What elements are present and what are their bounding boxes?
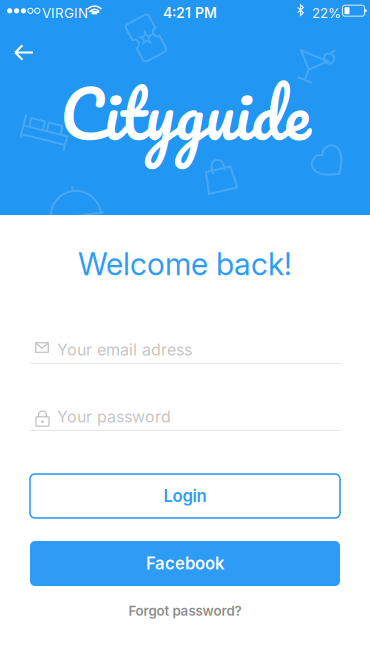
staticText: Login: [163, 486, 206, 506]
button[interactable]: Forgot password?: [105, 599, 265, 623]
button[interactable]: Facebook: [30, 541, 340, 586]
staticText: VIRGIN: [42, 5, 88, 21]
staticText: Cityguide: [60, 57, 310, 169]
button[interactable]: Back: [2, 32, 46, 74]
staticText: Facebook: [146, 553, 224, 574]
staticText: Your password: [57, 407, 171, 426]
staticText: Welcome back!: [78, 245, 292, 282]
staticText: Your email adress: [57, 340, 192, 359]
staticText: 22%: [312, 5, 341, 21]
staticText: Forgot password?: [128, 603, 241, 619]
staticText: 4:21 PM: [163, 4, 217, 21]
button[interactable]: Login: [30, 474, 340, 518]
